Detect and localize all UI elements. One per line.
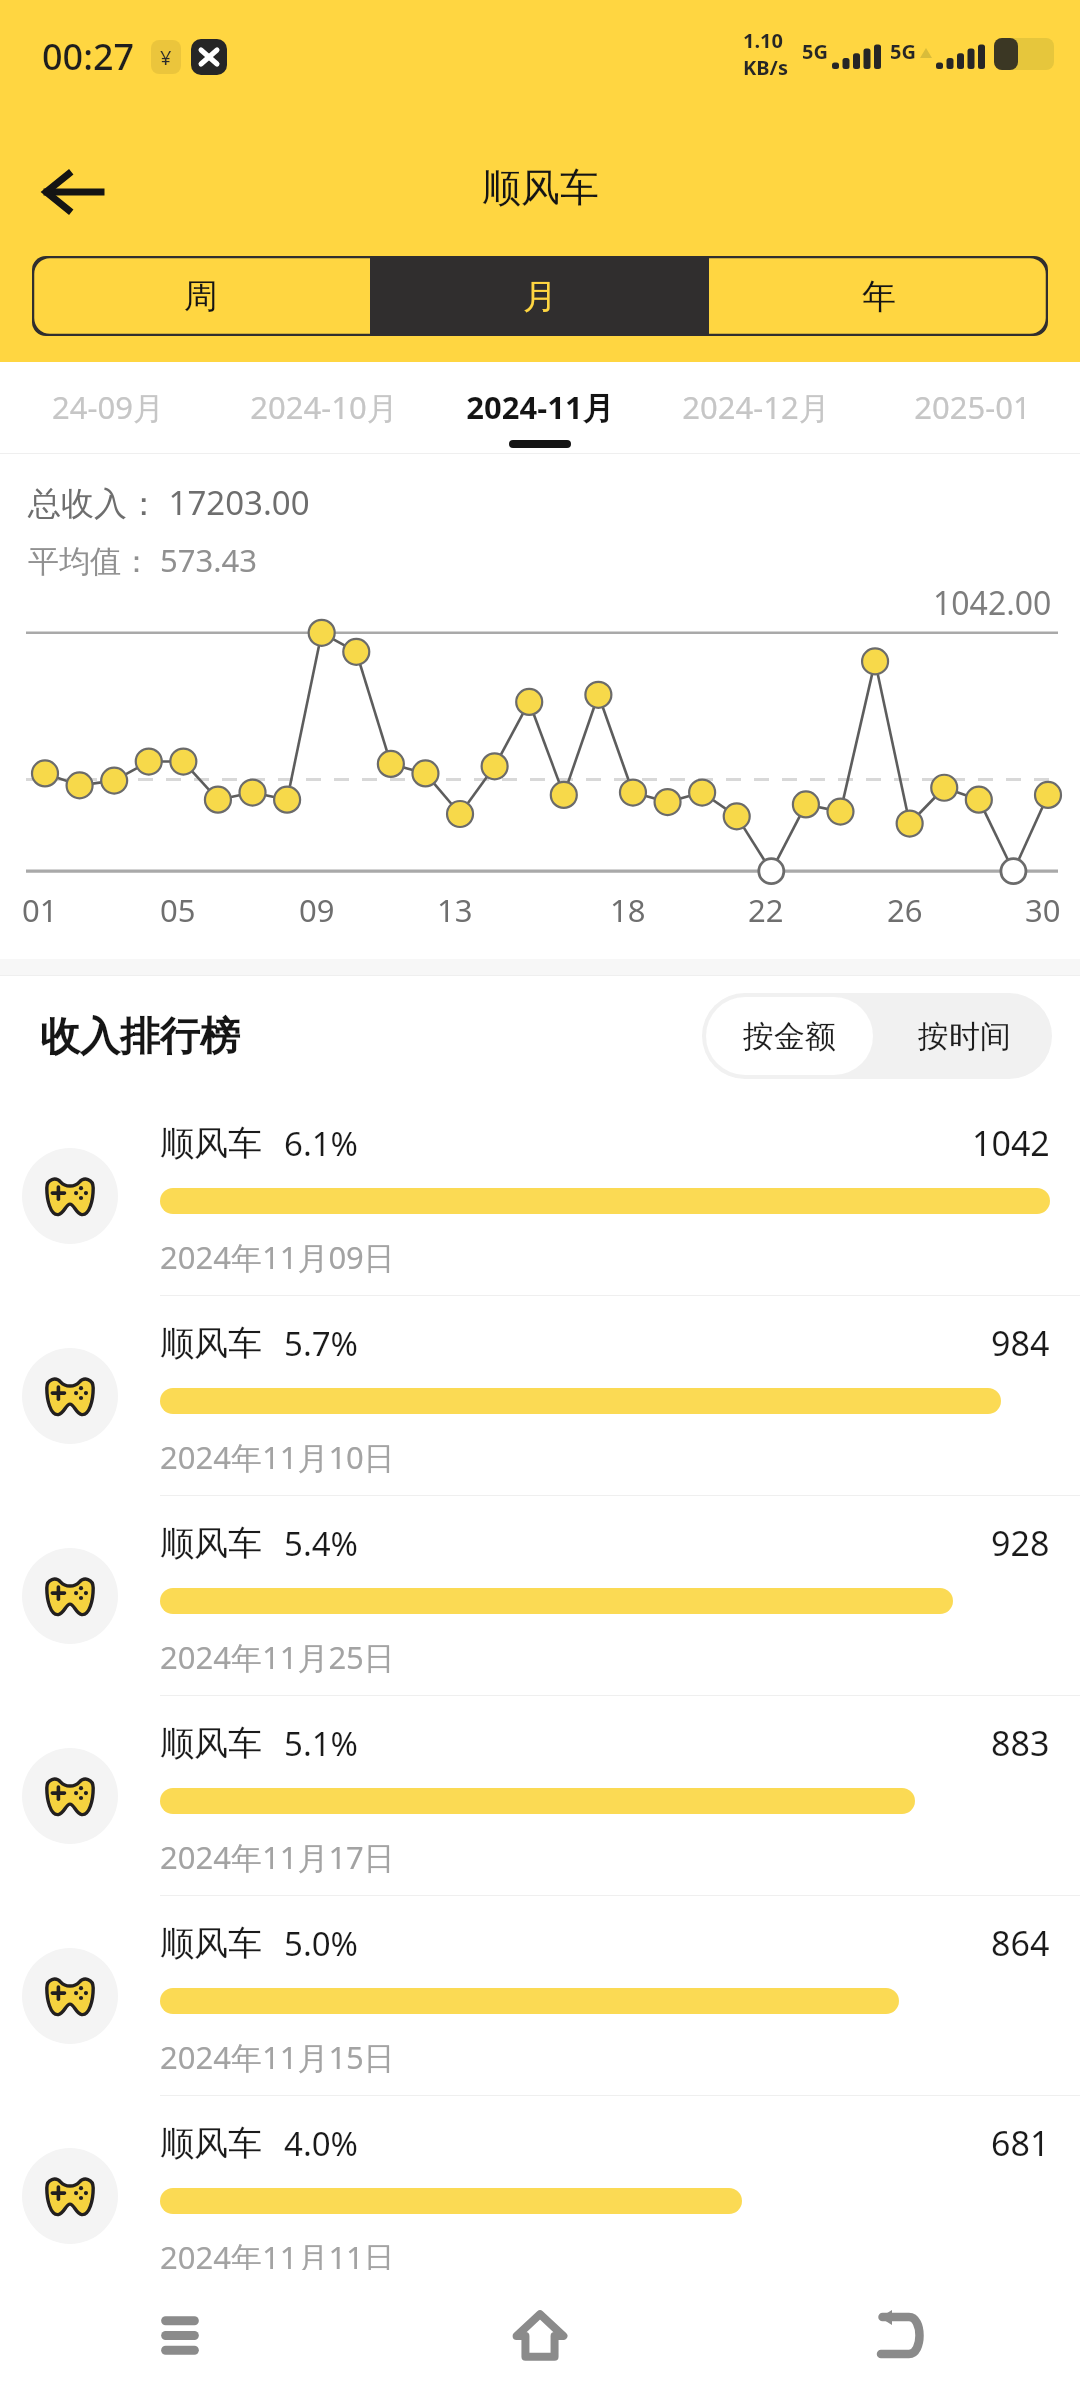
staticText: 05 — [160, 889, 196, 931]
button[interactable]: 2024-10月 — [216, 362, 432, 454]
staticText: 顺风车 — [160, 1522, 262, 1565]
staticText: KB/s — [743, 54, 788, 81]
staticText: 年 — [862, 275, 896, 318]
button[interactable]: Recents — [120, 2275, 240, 2395]
staticText: 平均值： 573.43 — [28, 539, 258, 581]
staticText: 顺风车 — [160, 1722, 262, 1765]
button[interactable]: Back — [22, 142, 122, 242]
staticText: 1042.00 — [933, 581, 1052, 621]
button[interactable]: 周 — [32, 256, 370, 336]
staticText: 13 — [437, 889, 473, 931]
staticText: 2024年11月11日 — [160, 2236, 395, 2278]
staticText: 1042 — [972, 1120, 1050, 1166]
staticText: 5.1% — [284, 1721, 359, 1766]
staticText: 2024-12月 — [682, 386, 830, 428]
staticText: 5G — [802, 38, 828, 65]
button[interactable]: 按时间 — [877, 993, 1052, 1079]
staticText: ¥ — [160, 44, 172, 71]
staticText: 月 — [523, 275, 557, 318]
staticText: 681 — [991, 2120, 1050, 2166]
staticText: 18 — [610, 889, 646, 931]
button[interactable]: 顺风车 — [0, 1096, 1080, 1296]
staticText: 5.7% — [284, 1321, 359, 1366]
button[interactable]: Home — [480, 2275, 600, 2395]
staticText: 30 — [1025, 889, 1061, 931]
button[interactable]: 24-09月 — [0, 362, 216, 454]
staticText: 00:27 — [42, 32, 135, 81]
staticText: 928 — [991, 1520, 1050, 1566]
staticText: 按金额 — [743, 1017, 836, 1056]
button[interactable]: 2025-01 — [864, 362, 1080, 454]
staticText: 2024年11月10日 — [160, 1436, 395, 1478]
button[interactable]: 2024-12月 — [648, 362, 864, 454]
button[interactable]: 月 — [370, 256, 709, 336]
staticText: 2024年11月09日 — [160, 1236, 395, 1278]
staticText: 5.0% — [284, 1921, 359, 1966]
staticText: 5.4% — [284, 1521, 359, 1566]
staticText: 顺风车 — [160, 2122, 262, 2165]
button[interactable]: 按金额 — [706, 997, 873, 1075]
button[interactable]: 顺风车 — [0, 1696, 1080, 1896]
staticText: 顺风车 — [160, 1322, 262, 1365]
staticText: 5G — [890, 38, 916, 65]
button[interactable]: 顺风车 — [0, 1896, 1080, 2096]
staticText: 2025-01 — [914, 386, 1031, 428]
staticText: 顺风车 — [482, 163, 599, 212]
staticText: 周 — [184, 275, 218, 318]
staticText: 总收入： 17203.00 — [28, 480, 310, 525]
button[interactable]: 年 — [709, 256, 1048, 336]
staticText: 24-09月 — [52, 386, 164, 428]
button[interactable]: 顺风车 — [0, 1496, 1080, 1696]
staticText: 26 — [887, 889, 923, 931]
staticText: 2024年11月15日 — [160, 2036, 395, 2078]
staticText: 22 — [748, 889, 784, 931]
button[interactable]: 顺风车 — [0, 2096, 1080, 2296]
staticText: 09 — [299, 889, 335, 931]
button[interactable]: Back — [840, 2275, 960, 2395]
staticText: 6.1% — [284, 1121, 359, 1166]
staticText: 顺风车 — [160, 1122, 262, 1165]
staticText: 2024年11月17日 — [160, 1836, 395, 1878]
staticText: 收入排行榜 — [40, 1011, 240, 1061]
button[interactable]: 顺风车 — [0, 1296, 1080, 1496]
staticText: 2024-11月 — [466, 386, 614, 428]
staticText: 按时间 — [918, 1017, 1011, 1056]
staticText: 01 — [22, 889, 58, 931]
staticText: 顺风车 — [160, 1922, 262, 1965]
staticText: 1.10 — [743, 27, 783, 54]
staticText: 2024年11月25日 — [160, 1636, 395, 1678]
staticText: 864 — [991, 1920, 1050, 1966]
staticText: 2024-10月 — [250, 386, 398, 428]
button[interactable]: 2024-11月 — [432, 362, 648, 454]
staticText: 4.0% — [284, 2121, 359, 2166]
staticText: 883 — [991, 1720, 1050, 1766]
staticText: 984 — [991, 1320, 1050, 1366]
